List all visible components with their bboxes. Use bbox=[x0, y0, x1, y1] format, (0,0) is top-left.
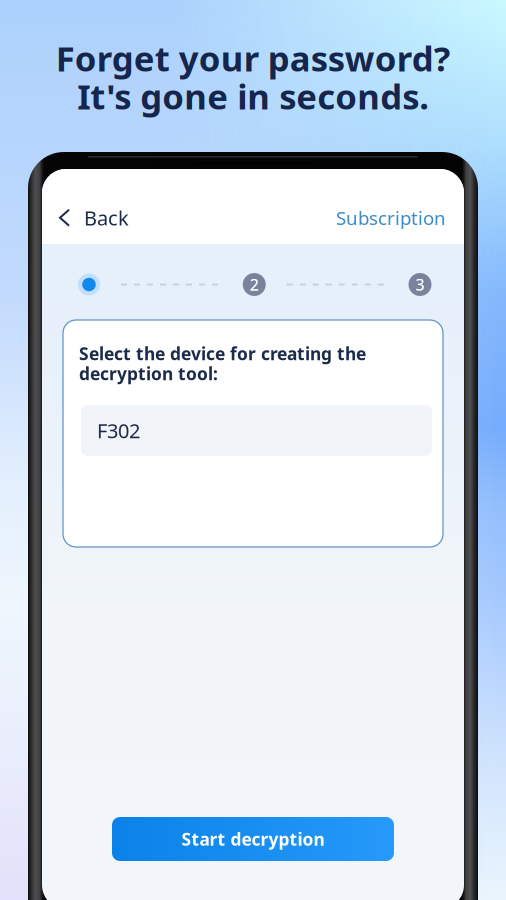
button[interactable]: F302 bbox=[79, 405, 430, 456]
staticText: Select the device for creating the decry… bbox=[79, 342, 366, 385]
button[interactable]: Back bbox=[54, 195, 135, 240]
staticText: 3 bbox=[415, 274, 424, 295]
button[interactable]: Start decryption bbox=[112, 817, 394, 861]
staticText: F302 bbox=[97, 417, 140, 444]
staticText: 2 bbox=[250, 274, 259, 295]
staticText: Back bbox=[84, 204, 129, 231]
button[interactable]: Subscription bbox=[330, 196, 452, 239]
staticText: Subscription bbox=[336, 205, 446, 230]
staticText: Forget your password? It's gone in secon… bbox=[55, 35, 450, 119]
staticText: Start decryption bbox=[181, 827, 324, 850]
